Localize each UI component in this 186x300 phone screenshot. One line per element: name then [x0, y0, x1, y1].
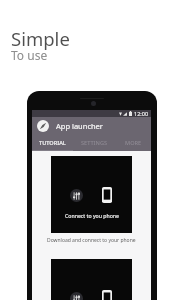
button[interactable]: SETTINGS — [73, 135, 115, 151]
staticText: 12:00 — [134, 110, 149, 117]
staticText: TUTORIAL — [39, 139, 66, 147]
staticText: App launcher — [56, 121, 103, 131]
staticText: SETTINGS — [81, 139, 108, 147]
staticText: Download and connect to your phone — [47, 237, 136, 244]
button[interactable]: Tune settings — [51, 259, 132, 300]
staticText: Simple — [11, 26, 70, 51]
other: Phone — [102, 187, 112, 203]
staticText: To use — [11, 47, 48, 63]
staticText: MORE — [125, 139, 142, 147]
other: App logo — [37, 120, 49, 132]
button[interactable]: MORE — [115, 135, 151, 151]
other: Tune settings — [70, 189, 83, 202]
staticText: Connect to you phone — [65, 212, 119, 219]
button[interactable]: TUTORIAL — [32, 135, 73, 151]
other: Phone — [102, 290, 112, 300]
button[interactable]: App logo — [37, 120, 103, 132]
other: Tune settings — [70, 292, 83, 300]
button[interactable]: Tune settings — [51, 156, 132, 233]
